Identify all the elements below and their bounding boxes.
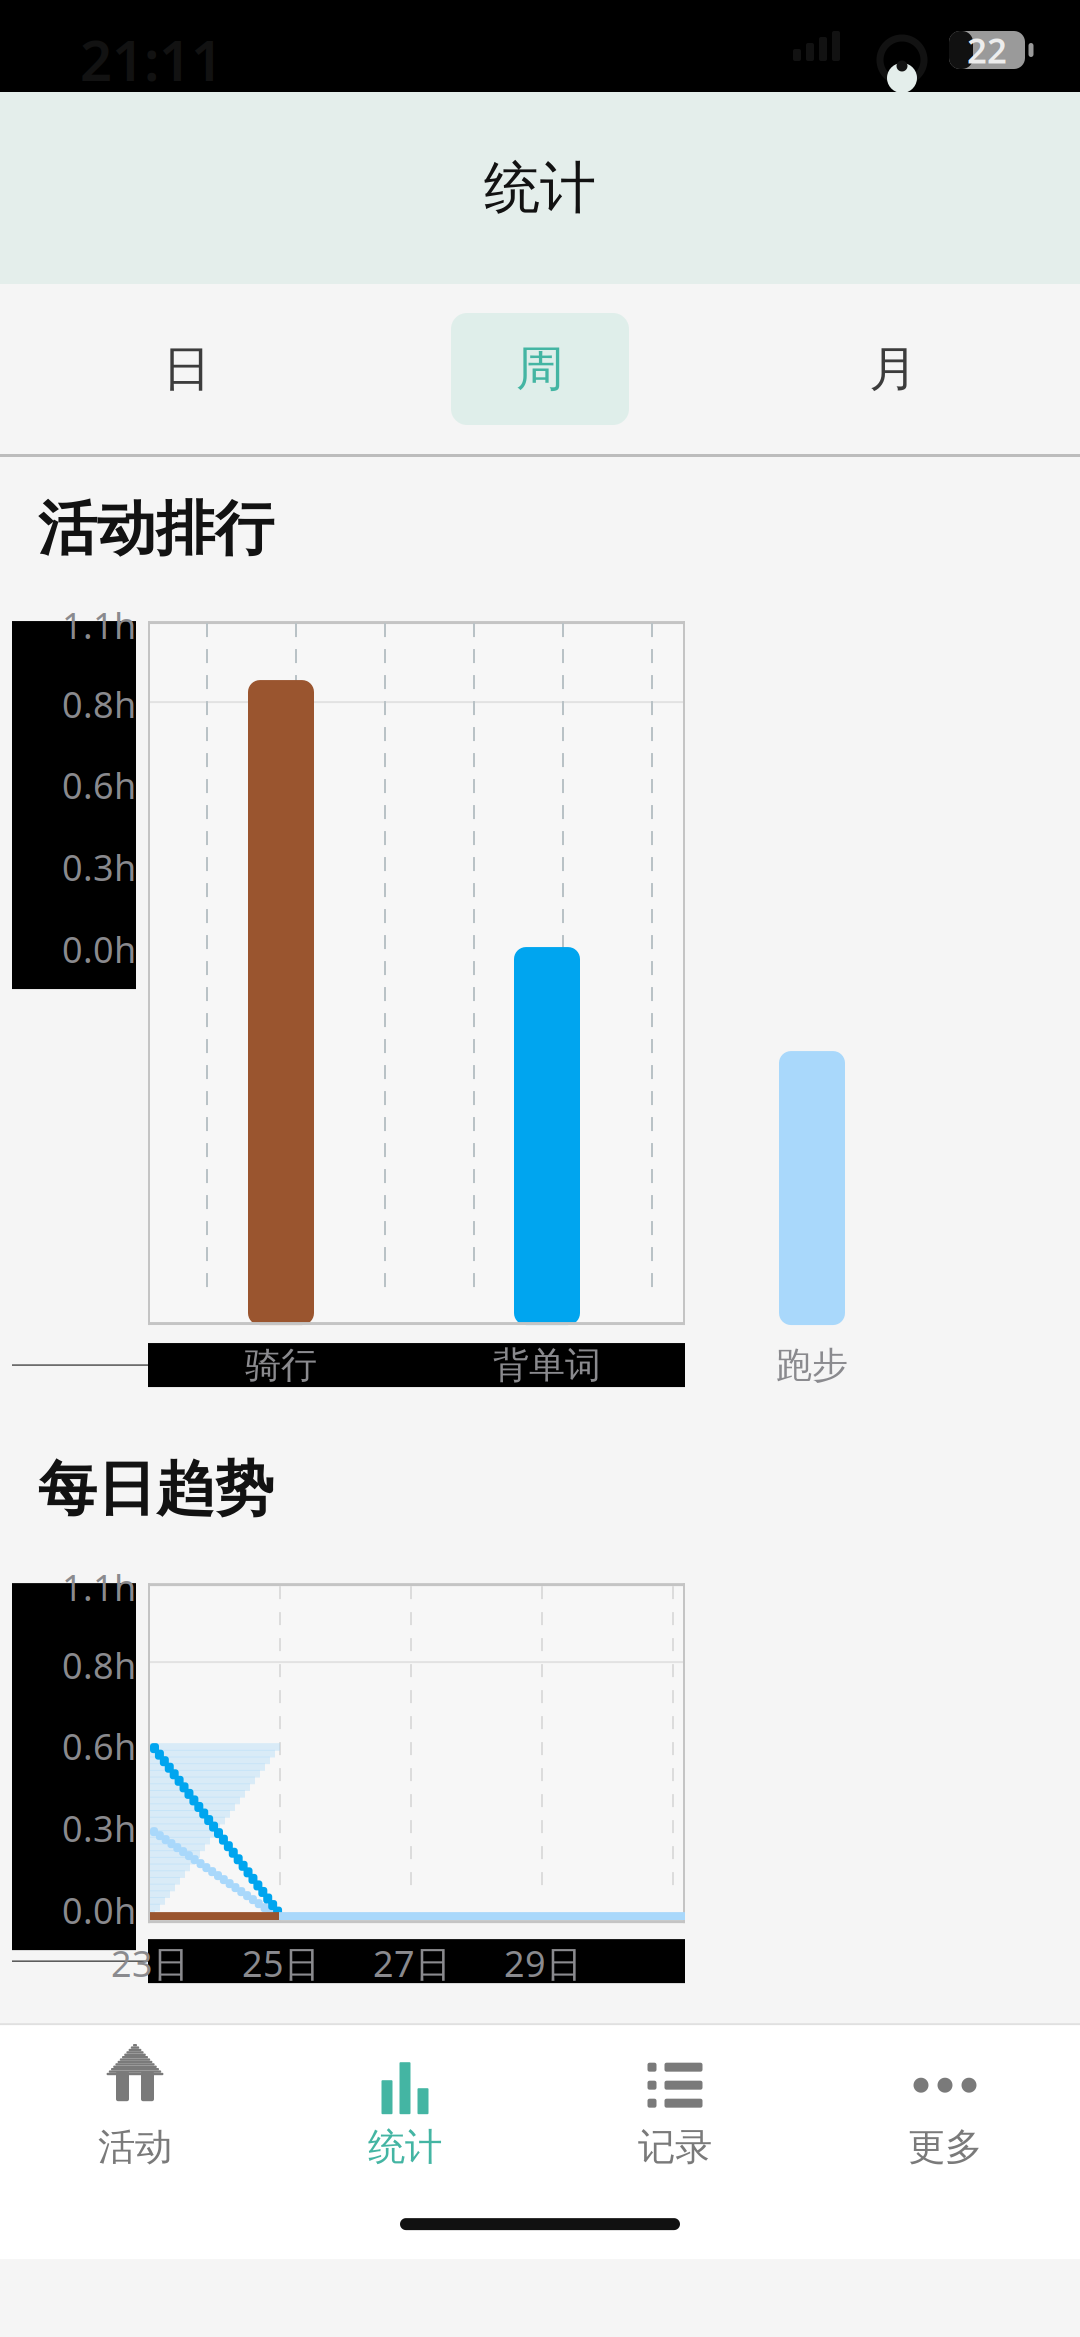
staticText: 0.6h (62, 761, 136, 809)
button[interactable]: 活动 (0, 2034, 270, 2180)
staticText: 周 (516, 339, 564, 398)
staticText: 统计 (484, 154, 596, 222)
staticText: 每日趋势 (38, 1453, 274, 1525)
staticText: 跑步 (776, 1343, 848, 1387)
staticText: 29日 (504, 1939, 582, 1987)
staticText: 活动排行 (38, 493, 274, 565)
button[interactable]: 周 (451, 313, 629, 425)
staticText: 0.3h (62, 843, 136, 891)
staticText: 1.1h (62, 1563, 136, 1611)
staticText: 统计 (368, 2124, 442, 2170)
staticText: 日 (163, 339, 211, 398)
staticText: 1.1h (62, 601, 136, 649)
staticText: 活动 (98, 2124, 172, 2170)
staticText: 记录 (638, 2124, 712, 2170)
button[interactable]: 记录 (540, 2034, 810, 2180)
staticText: 0.0h (62, 925, 136, 973)
button[interactable]: 更多 (810, 2034, 1080, 2180)
staticText: 0.8h (62, 1641, 136, 1689)
staticText: 背单词 (493, 1343, 601, 1387)
button[interactable]: 统计 (270, 2034, 540, 2180)
staticText: 月 (869, 339, 917, 398)
staticText: 23日 (111, 1939, 189, 1987)
staticText: 22 (967, 27, 1007, 73)
staticText: 0.3h (62, 1804, 136, 1852)
button[interactable]: 日 (10, 313, 363, 425)
staticText: 0.0h (62, 1886, 136, 1934)
staticText: 0.6h (62, 1722, 136, 1770)
staticText: 27日 (373, 1939, 451, 1987)
button[interactable]: 月 (717, 313, 1070, 425)
staticText: 骑行 (245, 1343, 317, 1387)
staticText: 21:11 (80, 22, 223, 96)
staticText: 25日 (242, 1939, 320, 1987)
staticText: 更多 (908, 2124, 982, 2170)
staticText: 0.8h (62, 680, 136, 728)
